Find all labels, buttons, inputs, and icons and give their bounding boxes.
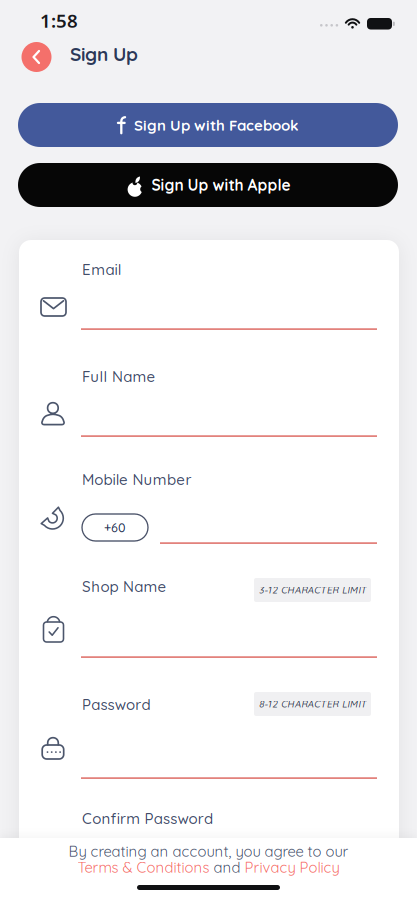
staticText: 8-12 CHARACTER LIMIT [259,698,366,710]
button[interactable]: +60 [82,514,148,541]
staticText: and [209,858,244,876]
staticText: Privacy Policy [244,858,339,876]
staticText: Sign Up [70,42,138,66]
staticText: Sign Up with Apple [151,175,290,195]
staticText: Shop Name [82,577,167,596]
staticText: Terms & Conditions [77,858,209,876]
button[interactable] [81,290,377,330]
button[interactable] [81,739,377,779]
button[interactable]: Sign Up with Facebook [18,103,398,147]
staticText: +60 [104,520,126,535]
button[interactable] [21,42,51,72]
staticText: 1:58 [40,8,78,33]
staticText: By creating an account, you agree to our [68,842,348,860]
staticText: Full Name [82,367,156,386]
button[interactable] [160,504,377,544]
button[interactable]: Sign Up with Apple [18,163,398,207]
staticText: Mobile Number [82,470,191,489]
button[interactable]: Terms & Conditions [77,858,209,876]
staticText: Confirm Password [82,809,213,828]
staticText: Email [82,260,122,279]
button[interactable] [81,618,377,658]
staticText: Sign Up with Facebook [134,116,299,134]
button[interactable]: Privacy Policy [244,858,339,876]
staticText: 3-12 CHARACTER LIMIT [259,584,366,596]
button[interactable] [81,397,377,437]
staticText: Password [82,695,150,714]
